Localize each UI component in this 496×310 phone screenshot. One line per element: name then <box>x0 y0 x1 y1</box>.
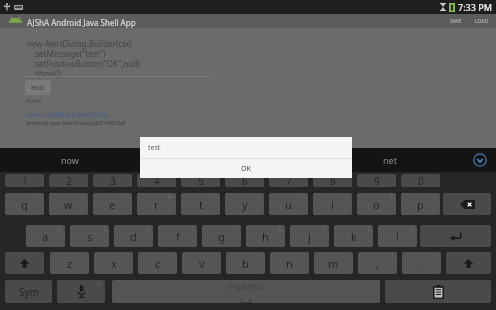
staticText: a <box>42 229 49 244</box>
button[interactable]: h <box>246 225 285 247</box>
staticText: y <box>242 197 248 212</box>
button[interactable]: now <box>55 148 85 172</box>
button[interactable]: Shift <box>446 252 491 274</box>
button[interactable]: LOAD <box>471 15 493 28</box>
button[interactable]: b <box>226 252 265 274</box>
staticText: net <box>383 154 397 166</box>
button[interactable]: n <box>270 252 309 274</box>
staticText: q <box>21 197 28 212</box>
staticText: eval <box>31 83 45 93</box>
staticText: ) <box>412 226 414 233</box>
button[interactable]: 0 <box>401 174 440 187</box>
button[interactable]: 7 <box>269 174 308 187</box>
button[interactable]: u <box>269 193 308 215</box>
button[interactable]: s <box>70 225 109 247</box>
staticText: c <box>155 256 161 271</box>
staticText: 5 <box>198 174 204 187</box>
staticText: o <box>373 197 380 212</box>
button[interactable]: 2 <box>49 174 88 187</box>
button[interactable]: d <box>114 225 153 247</box>
button[interactable]: y <box>225 193 264 215</box>
button[interactable]: class android.app.AlertDialog <box>26 110 109 118</box>
button[interactable]: Voice input <box>57 280 105 303</box>
button[interactable]: 3 <box>93 174 132 187</box>
staticText: .setMessage("test") <box>33 48 106 59</box>
staticText: n <box>286 256 293 271</box>
staticText: , <box>376 256 379 271</box>
staticText: l <box>396 229 399 244</box>
staticText: SAVE <box>450 18 462 25</box>
button[interactable]: p <box>401 193 440 215</box>
button[interactable]: z <box>50 252 89 274</box>
button[interactable]: 4 <box>137 174 176 187</box>
button[interactable]: c <box>138 252 177 274</box>
staticText: [ <box>391 194 393 201</box>
button[interactable]: 8 <box>313 174 352 187</box>
staticText: k <box>351 229 357 244</box>
staticText: p <box>417 197 424 212</box>
button[interactable]: q <box>5 193 44 215</box>
staticText: test <box>148 143 161 153</box>
button[interactable]: 9 <box>357 174 396 187</box>
button[interactable]: r <box>137 193 176 215</box>
staticText: 7:33 PM <box>458 1 492 13</box>
button[interactable]: i <box>313 193 352 215</box>
staticText: v <box>199 256 205 271</box>
button[interactable]: OK <box>140 159 352 178</box>
staticText: 8 <box>330 174 336 187</box>
staticText: 1 <box>22 174 28 187</box>
staticText: % <box>168 194 173 201</box>
button[interactable]: 5 <box>181 174 220 187</box>
button[interactable]: Shift <box>5 252 44 274</box>
staticText: class android.app.AlertDialog <box>26 110 109 118</box>
button[interactable]: x <box>94 252 133 274</box>
staticText: 2 <box>66 174 72 187</box>
button[interactable]: l <box>378 225 417 247</box>
staticText: . <box>420 256 423 271</box>
button[interactable]: Expand suggestions <box>473 153 487 167</box>
button[interactable]: Sym <box>5 280 52 303</box>
staticText: ! <box>392 253 394 260</box>
button[interactable]: v <box>182 252 221 274</box>
button[interactable]: t <box>181 193 220 215</box>
button[interactable]: e <box>93 193 132 215</box>
staticText: new AlertDialog.Builder(ctx) <box>27 38 132 49</box>
button[interactable]: f <box>158 225 197 247</box>
button[interactable]: g <box>202 225 241 247</box>
staticText: f <box>176 229 180 244</box>
button[interactable]: a <box>26 225 65 247</box>
button[interactable]: 1 <box>5 174 44 187</box>
staticText: # <box>146 226 150 233</box>
button[interactable]: SAVE <box>446 15 466 28</box>
button[interactable]: 6 <box>225 174 264 187</box>
staticText: ] <box>435 194 437 201</box>
button[interactable]: net <box>375 148 405 172</box>
staticText: d <box>130 229 137 244</box>
button[interactable]: m <box>314 252 353 274</box>
staticText: 0 <box>418 174 424 187</box>
button[interactable]: k <box>334 225 373 247</box>
staticText: English(US) <box>228 282 265 292</box>
button[interactable]: Backspace <box>443 193 491 215</box>
button[interactable]: eval <box>25 80 51 95</box>
button[interactable]: o <box>357 193 396 215</box>
staticText: ^ <box>214 194 217 201</box>
button[interactable]: Clipboard <box>385 280 491 303</box>
staticText: $ <box>103 226 106 233</box>
button[interactable]: Enter <box>420 225 491 247</box>
button[interactable]: j <box>290 225 329 247</box>
staticText: 40ms <box>26 97 42 105</box>
button[interactable]: w <box>49 193 88 215</box>
staticText: j <box>308 229 311 244</box>
staticText: now <box>61 154 79 166</box>
